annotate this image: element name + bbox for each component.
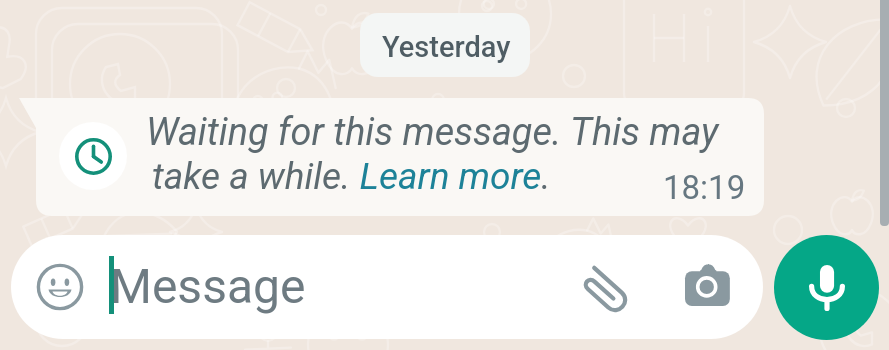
staticText: Waiting for this message. This may	[146, 110, 719, 154]
staticText: Yesterday	[382, 30, 511, 64]
staticText: take a while. Learn more.	[152, 155, 551, 198]
button[interactable]: Yesterday	[360, 13, 530, 77]
staticText: Message	[110, 258, 306, 314]
button[interactable]: Camera	[685, 264, 731, 306]
button[interactable]: Attach	[577, 263, 633, 319]
button[interactable]: Voice message	[774, 235, 879, 340]
staticText: 18:19	[663, 168, 746, 207]
button[interactable]: Emoji	[36, 263, 84, 311]
